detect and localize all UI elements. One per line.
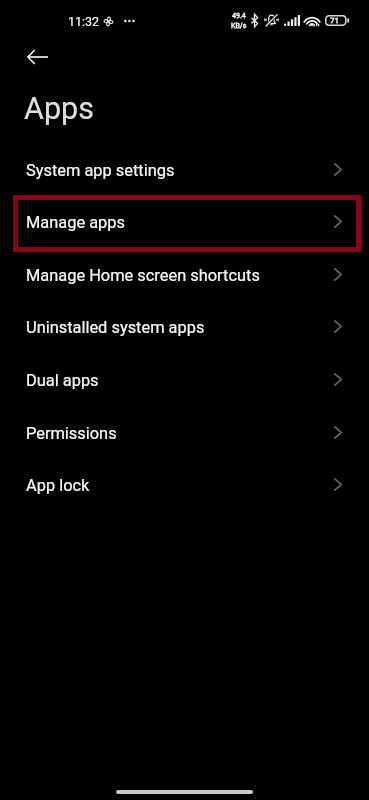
staticText: Manage Home screen shortcuts <box>26 266 260 285</box>
staticText: App lock <box>26 476 90 495</box>
staticText: KB/s <box>231 21 247 29</box>
button[interactable]: Permissions <box>0 407 369 460</box>
staticText: Permissions <box>26 424 117 443</box>
staticText: Dual apps <box>26 371 99 390</box>
button[interactable]: Manage Home screen shortcuts <box>0 249 369 302</box>
button[interactable]: Uninstalled system apps <box>0 301 369 354</box>
staticText: Apps <box>24 91 94 127</box>
staticText: Manage apps <box>26 213 125 232</box>
button[interactable]: Manage apps <box>0 196 369 249</box>
staticText: 71 <box>330 16 339 25</box>
staticText: Uninstalled system apps <box>26 318 205 337</box>
button[interactable]: Back <box>15 35 59 79</box>
staticText: 49.4 <box>232 11 246 19</box>
staticText: 11:32 <box>68 14 100 29</box>
button[interactable]: Dual apps <box>0 354 369 407</box>
button[interactable]: System app settings <box>0 144 369 197</box>
button[interactable]: App lock <box>0 459 369 512</box>
staticText: System app settings <box>26 161 175 180</box>
